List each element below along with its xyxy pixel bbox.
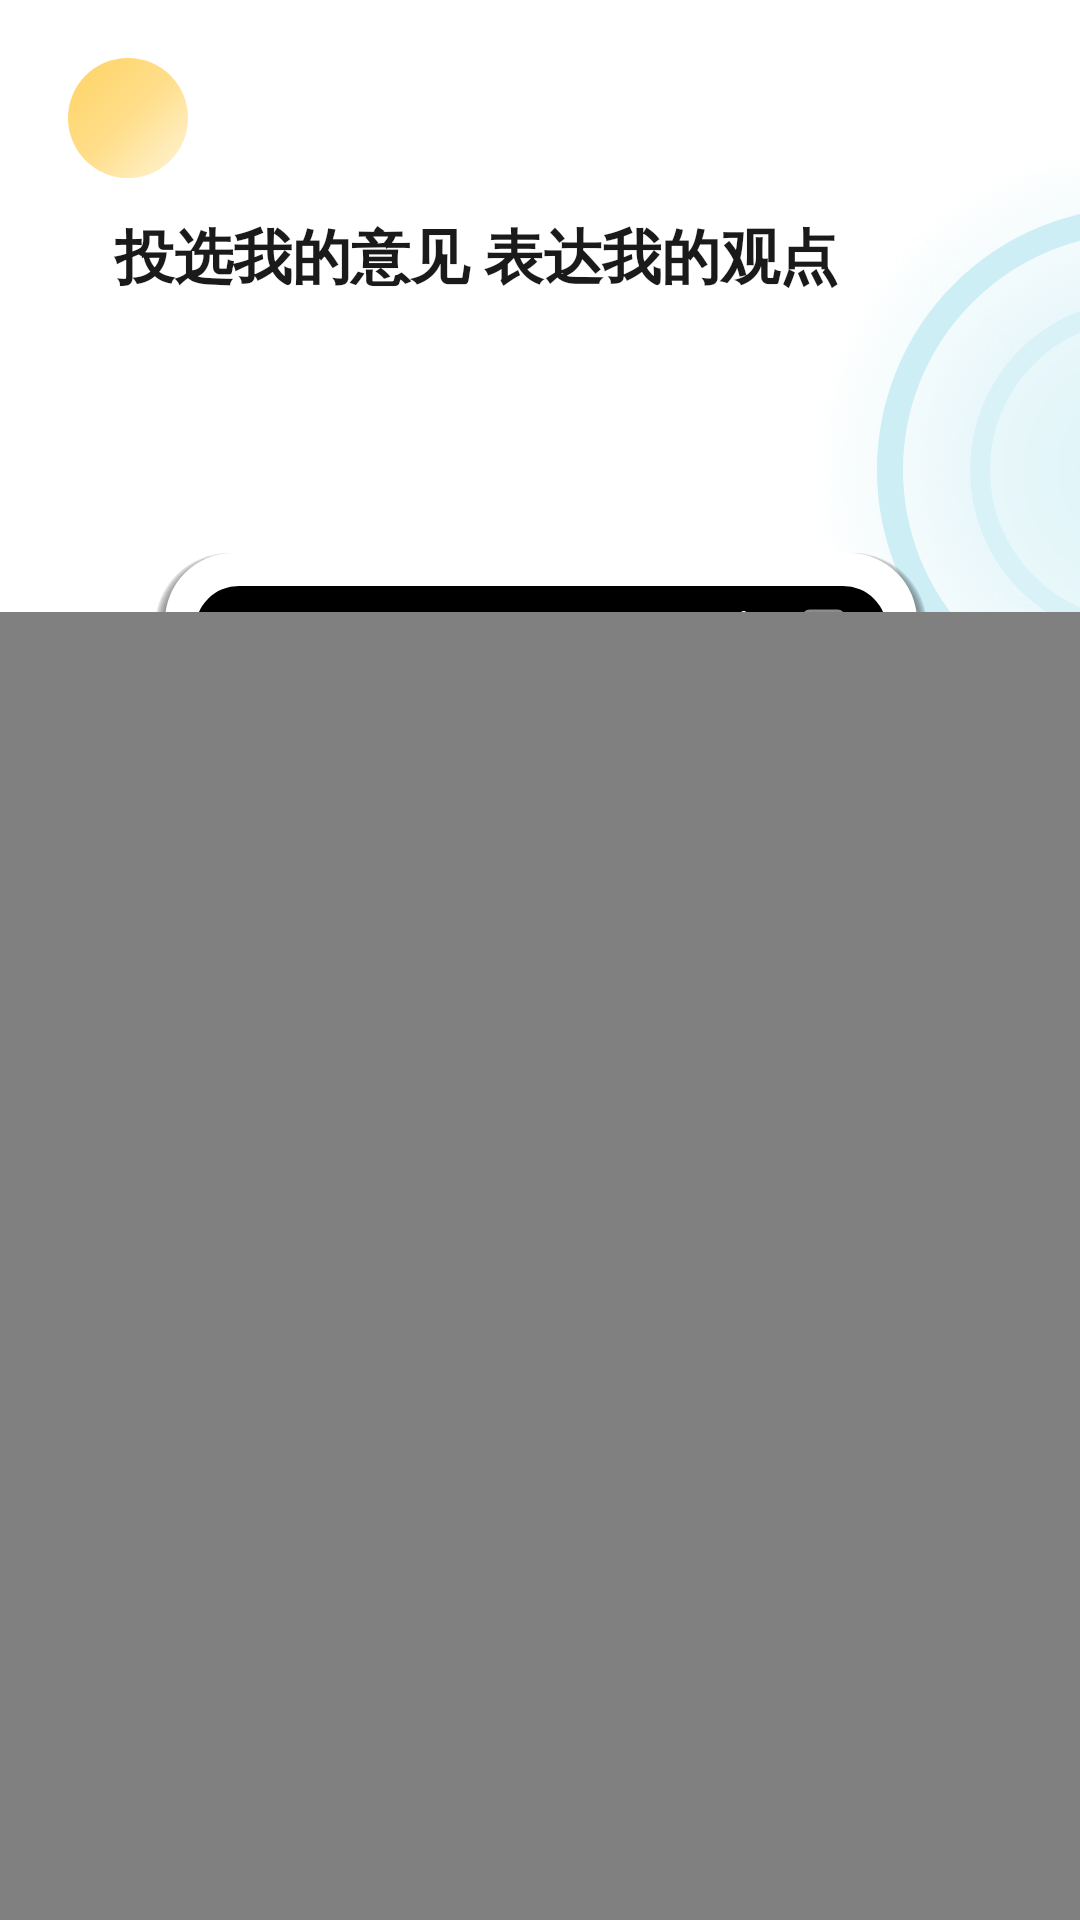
staticText: 投选我的意见 表达我的观点	[115, 215, 839, 296]
staticText: 10:14	[231, 604, 309, 645]
staticText: 5G	[757, 607, 791, 642]
